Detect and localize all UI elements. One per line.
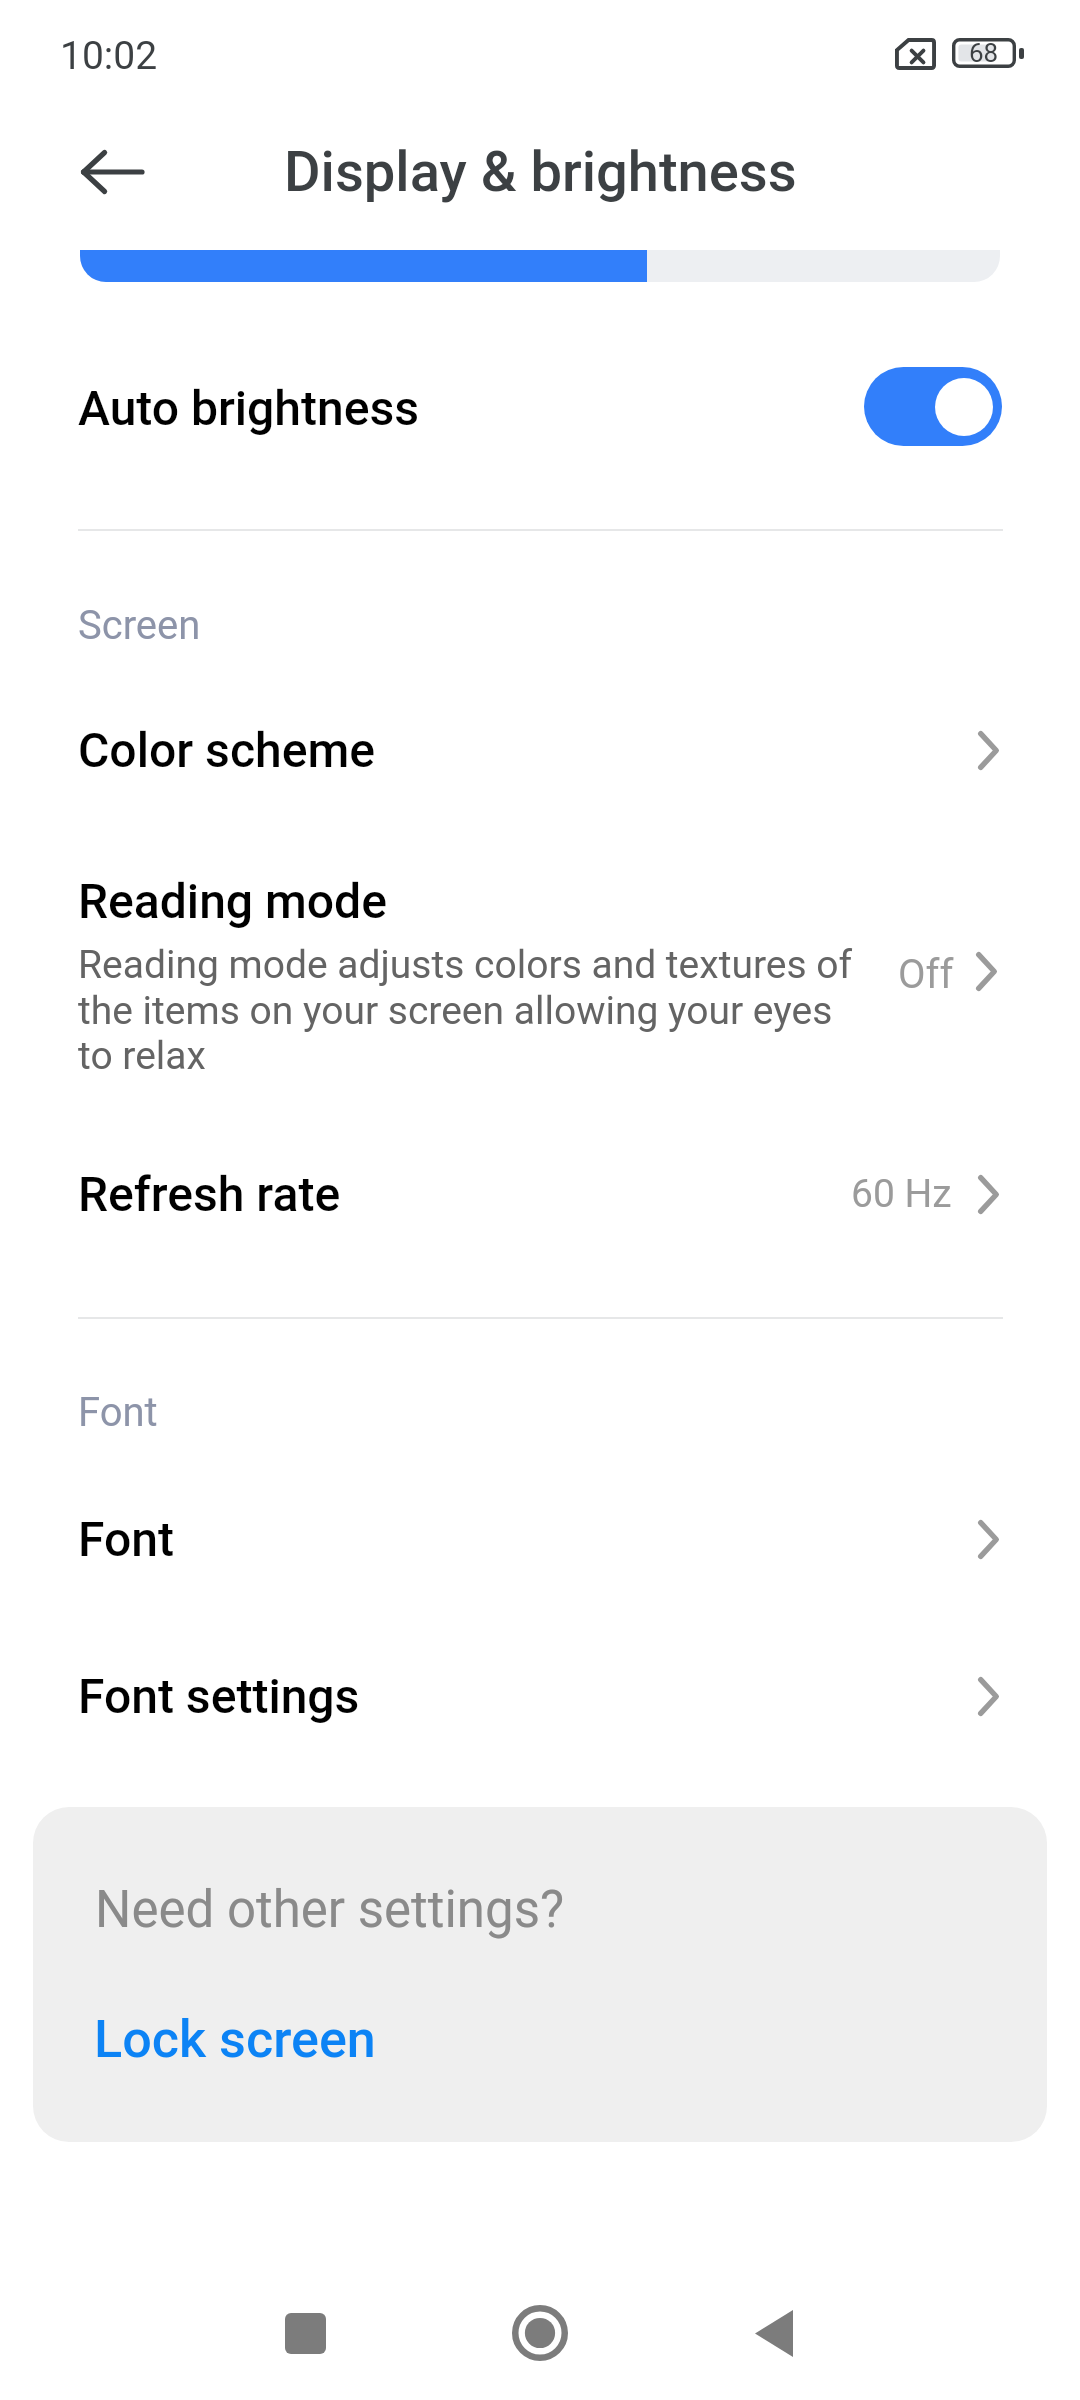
button[interactable]: Back — [714, 2273, 834, 2393]
staticText: 60 Hz — [851, 1171, 952, 1217]
button[interactable]: Color scheme — [0, 686, 1080, 814]
staticText: Refresh rate — [78, 1166, 341, 1222]
staticText: Reading mode adjusts colors and textures… — [78, 942, 868, 1078]
button[interactable]: Brightness — [80, 250, 1000, 282]
staticText: Need other settings? — [95, 1880, 565, 1940]
staticText: Font — [78, 1511, 174, 1567]
staticText: Lock screen — [94, 2009, 376, 2070]
staticText: Screen — [78, 602, 201, 649]
button[interactable]: Font settings — [0, 1632, 1080, 1760]
button[interactable]: Lock screen — [94, 2009, 376, 2070]
button[interactable]: Font — [0, 1475, 1080, 1603]
button[interactable]: Home — [480, 2273, 600, 2393]
staticText: Off — [898, 951, 954, 998]
button[interactable]: Back — [55, 125, 147, 217]
button[interactable]: Refresh rate — [0, 1130, 1080, 1258]
button[interactable]: Recents — [245, 2273, 365, 2393]
staticText: Font settings — [78, 1668, 360, 1724]
button[interactable]: Reading mode — [0, 860, 1080, 1080]
staticText: Auto brightness — [78, 380, 419, 436]
staticText: Font — [78, 1389, 158, 1436]
staticText: Display & brightness — [284, 139, 797, 205]
staticText: 68 — [969, 38, 999, 68]
staticText: Reading mode — [78, 873, 387, 929]
button[interactable]: Auto brightness — [0, 330, 1080, 485]
staticText: 10:02 — [60, 33, 158, 79]
staticText: Color scheme — [78, 722, 375, 778]
